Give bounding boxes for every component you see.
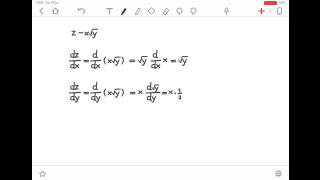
- button[interactable]: Page view: [273, 6, 286, 16]
- button[interactable]: Back: [35, 6, 48, 16]
- staticText: 64%: [279, 1, 285, 5]
- staticText: 18:06 Tue 28 Jul: [36, 1, 59, 5]
- staticText: 1: [269, 9, 272, 14]
- button[interactable]: Add page: [255, 6, 268, 16]
- button[interactable]: Pencil: [131, 6, 144, 16]
- button[interactable]: [32, 17, 289, 165]
- button[interactable]: Voice recording: [220, 6, 233, 16]
- button[interactable]: Home: [49, 6, 62, 16]
- button[interactable]: Shapes: [173, 6, 186, 16]
- button[interactable]: Favourite: [36, 167, 49, 180]
- button[interactable]: Eraser: [159, 6, 172, 16]
- button[interactable]: Undo: [75, 6, 88, 16]
- button[interactable]: Highlighter: [145, 6, 158, 16]
- button[interactable]: Lasso select: [187, 6, 200, 16]
- button[interactable]: Text tool: [103, 6, 116, 16]
- button[interactable]: Pen, selected: [117, 6, 130, 16]
- button[interactable]: Save: [272, 167, 285, 180]
